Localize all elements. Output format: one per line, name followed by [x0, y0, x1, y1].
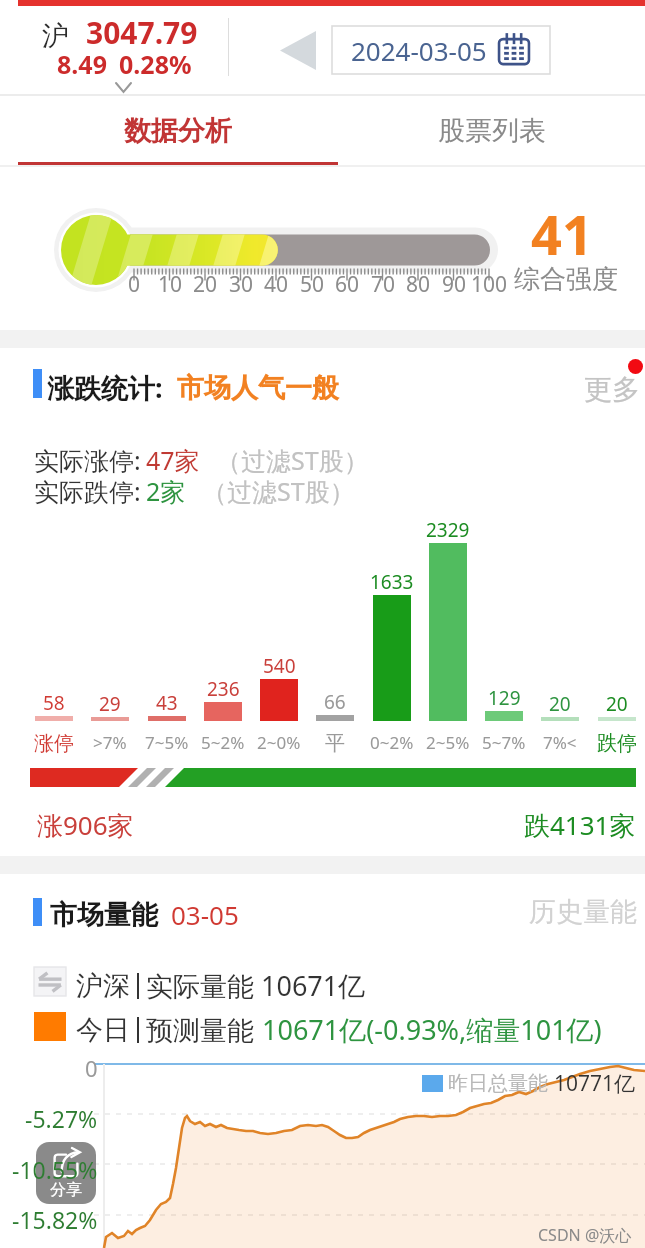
staticText: 股票列表: [438, 114, 546, 148]
staticText: 2~0%: [257, 731, 301, 754]
staticText: 30: [229, 270, 254, 299]
staticText: 3047.79: [86, 12, 198, 53]
staticText: 2024-03-05: [351, 33, 487, 68]
staticText: 7%<: [543, 731, 577, 754]
staticText: 今日: [76, 1013, 130, 1047]
staticText: 5~2%: [201, 731, 245, 754]
staticText: 60: [335, 270, 360, 299]
button[interactable]: 2024-03-05: [332, 26, 550, 74]
staticText: 7~5%: [145, 731, 189, 754]
staticText: -10.55%: [12, 1154, 98, 1185]
staticText: 涨停: [34, 731, 74, 756]
staticText: 沪: [42, 19, 69, 53]
staticText: 历史量能: [529, 895, 637, 929]
staticText: 80: [406, 270, 431, 299]
staticText: 40: [264, 270, 289, 299]
button[interactable]: 股票列表: [338, 100, 645, 162]
staticText: 20: [193, 270, 218, 299]
staticText: 市场人气一般: [177, 371, 339, 405]
staticText: 2329: [426, 517, 470, 543]
staticText: 沪深: [76, 969, 130, 1003]
staticText: 数据分析: [124, 114, 232, 148]
staticText: 昨日总量能: [448, 1071, 548, 1096]
button[interactable]: 沪: [0, 6, 228, 94]
staticText: 更多: [584, 372, 640, 407]
button[interactable]: 历史量能: [515, 890, 637, 934]
staticText: （过滤ST股）: [216, 443, 369, 477]
staticText: 跌4131家: [524, 807, 636, 843]
staticText: 41: [531, 197, 593, 271]
button[interactable]: 数据分析: [18, 100, 338, 162]
staticText: -5.27%: [25, 1103, 98, 1134]
staticText: 涨跌统计:: [47, 369, 163, 406]
staticText: 47家: [146, 443, 200, 477]
staticText: 03-05: [171, 897, 239, 932]
staticText: 43: [156, 690, 178, 716]
staticText: 实际跌停:: [34, 474, 141, 508]
staticText: 10771亿: [554, 1069, 636, 1098]
staticText: 66: [324, 689, 346, 715]
staticText: 58: [43, 690, 65, 716]
staticText: 预测量能: [146, 1011, 262, 1048]
staticText: 10671亿(-0.93%,缩量101亿): [262, 1011, 602, 1048]
staticText: 1633: [370, 569, 414, 595]
staticText: 540: [263, 653, 296, 679]
staticText: 8.49: [57, 47, 107, 81]
staticText: 实际量能 10671亿: [146, 967, 366, 1004]
staticText: 20: [606, 691, 628, 717]
staticText: 0.28%: [119, 47, 192, 81]
staticText: 分享: [50, 1180, 82, 1200]
staticText: 实际涨停:: [34, 443, 141, 477]
staticText: 10: [158, 270, 183, 299]
staticText: 20: [549, 691, 571, 717]
staticText: CSDN @沃心: [538, 1224, 632, 1246]
staticText: 129: [488, 685, 521, 711]
staticText: 2~5%: [426, 731, 470, 754]
staticText: 90: [442, 270, 467, 299]
staticText: 涨906家: [37, 807, 134, 843]
staticText: 跌停: [597, 731, 637, 756]
staticText: 70: [371, 270, 396, 299]
staticText: -15.82%: [12, 1204, 98, 1235]
staticText: （过滤ST股）: [202, 474, 355, 508]
staticText: 市场量能: [50, 898, 158, 932]
staticText: 50: [300, 270, 325, 299]
staticText: 29: [99, 691, 121, 717]
staticText: 2家: [146, 474, 186, 508]
staticText: 0: [128, 270, 141, 299]
button[interactable]: Previous day: [266, 17, 330, 83]
staticText: >7%: [93, 731, 127, 754]
staticText: 0: [85, 1053, 98, 1083]
staticText: 0~2%: [370, 731, 414, 754]
button[interactable]: Share: [36, 1142, 96, 1204]
staticText: 100: [471, 270, 508, 299]
staticText: 综合强度: [514, 263, 618, 296]
button[interactable]: 更多: [570, 358, 645, 410]
staticText: 平: [325, 731, 345, 756]
staticText: 236: [207, 676, 240, 702]
staticText: 5~7%: [482, 731, 526, 754]
